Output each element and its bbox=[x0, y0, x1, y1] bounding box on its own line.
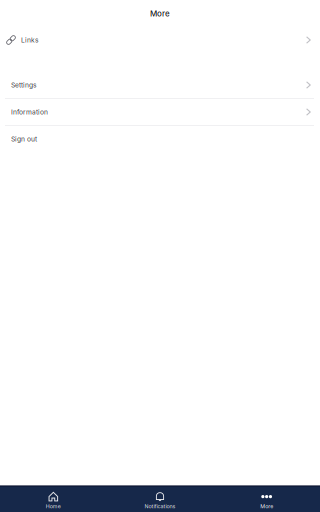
staticText: Settings bbox=[11, 81, 37, 89]
staticText: Sign out bbox=[11, 135, 37, 143]
button[interactable]: More bbox=[213, 489, 320, 512]
staticText: Notifications bbox=[144, 503, 175, 510]
button[interactable]: Links bbox=[0, 27, 320, 53]
staticText: More bbox=[150, 9, 170, 18]
button[interactable]: Sign out bbox=[0, 126, 320, 152]
button[interactable]: Information bbox=[0, 99, 320, 125]
staticText: More bbox=[260, 503, 273, 510]
staticText: Home bbox=[46, 503, 61, 510]
button[interactable]: Home bbox=[0, 489, 107, 512]
button[interactable]: Settings bbox=[0, 72, 320, 98]
staticText: Information bbox=[11, 108, 48, 116]
staticText: Links bbox=[21, 36, 39, 44]
button[interactable]: Notifications bbox=[107, 489, 213, 512]
